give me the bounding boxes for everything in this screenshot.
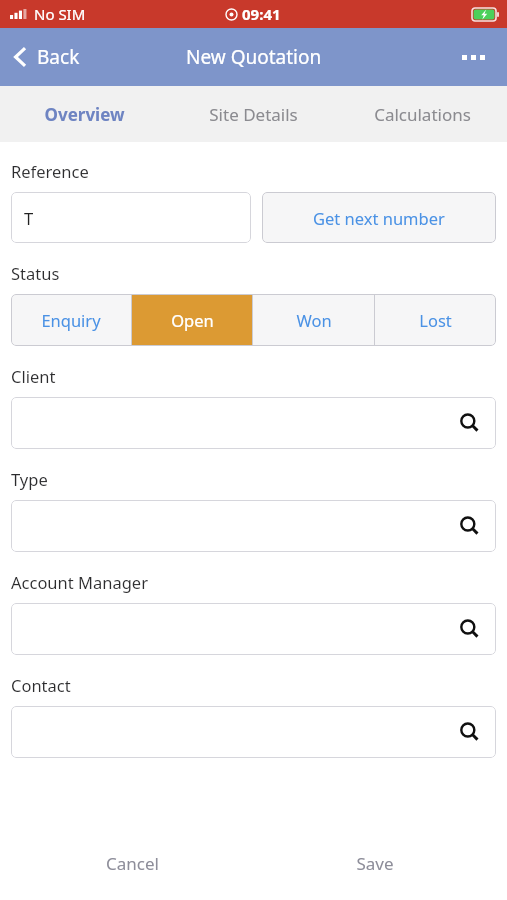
staticText: Type: [11, 468, 48, 490]
staticText: New Quotation: [186, 44, 322, 70]
button[interactable]: Get next number: [262, 192, 496, 243]
staticText: Reference: [11, 160, 89, 182]
button[interactable]: Enquiry: [11, 294, 131, 346]
button[interactable]: Search Type: [11, 500, 496, 552]
staticText: Account Manager: [11, 571, 148, 593]
staticText: No SIM: [34, 4, 86, 24]
button[interactable]: Won: [253, 294, 374, 346]
staticText: Back: [37, 44, 80, 70]
staticText: Open: [171, 309, 214, 331]
staticText: Get next number: [313, 207, 445, 229]
staticText: 09:41: [242, 4, 281, 24]
button[interactable]: Overview: [0, 86, 169, 142]
staticText: Site Details: [209, 103, 298, 126]
button[interactable]: Site Details: [169, 86, 338, 142]
staticText: T: [24, 207, 34, 229]
button[interactable]: Calculations: [338, 86, 507, 142]
button[interactable]: T: [11, 192, 251, 243]
staticText: Status: [11, 262, 60, 284]
staticText: Lost: [419, 309, 452, 331]
staticText: Contact: [11, 674, 71, 696]
button[interactable]: Search Contact: [11, 706, 496, 758]
staticText: Save: [356, 852, 394, 875]
button[interactable]: Back: [10, 38, 84, 76]
button[interactable]: More options: [454, 47, 493, 68]
button[interactable]: Lost: [375, 294, 496, 346]
staticText: Enquiry: [41, 309, 101, 331]
button[interactable]: Search Account Manager: [11, 603, 496, 655]
staticText: Client: [11, 365, 56, 387]
button[interactable]: Open: [132, 294, 252, 346]
staticText: Calculations: [374, 103, 471, 126]
staticText: Won: [296, 309, 332, 331]
button[interactable]: Save: [253, 826, 496, 900]
button[interactable]: Search Client: [11, 397, 496, 449]
staticText: Overview: [44, 103, 125, 126]
button[interactable]: Cancel: [11, 826, 253, 900]
staticText: Cancel: [106, 852, 159, 875]
